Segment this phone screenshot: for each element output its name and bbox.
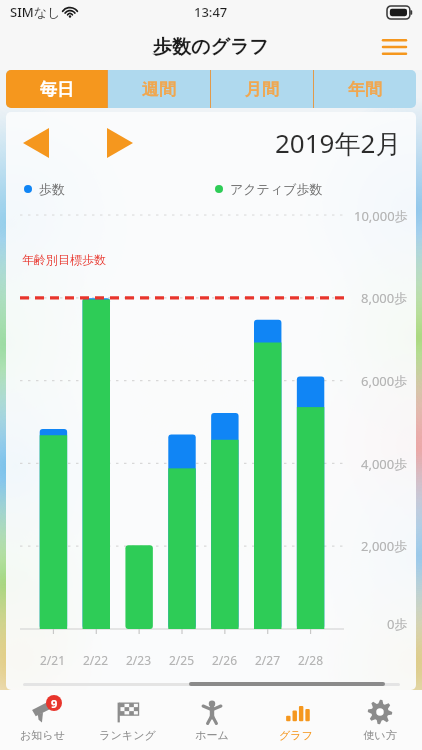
staticText: 2/27 xyxy=(255,652,281,668)
button[interactable]: 9 xyxy=(0,690,85,750)
staticText: 2/26 xyxy=(212,652,238,668)
button[interactable]: 週間 xyxy=(108,70,210,108)
staticText: 毎日 xyxy=(40,79,74,100)
staticText: 2/25 xyxy=(169,652,195,668)
button[interactable]: Menu xyxy=(374,27,414,67)
staticText: 8,000歩 xyxy=(361,289,408,307)
staticText: 0歩 xyxy=(387,615,408,633)
staticText: SIMなし xyxy=(10,3,61,21)
staticText: 2/21 xyxy=(40,652,66,668)
button[interactable]: Previous month xyxy=(14,121,58,165)
button[interactable]: ホーム xyxy=(170,690,254,750)
staticText: 使い方 xyxy=(363,728,397,742)
button[interactable]: ランキング xyxy=(85,690,170,750)
staticText: 週間 xyxy=(142,79,176,100)
button[interactable]: 使い方 xyxy=(338,690,422,750)
staticText: 6,000歩 xyxy=(361,372,408,390)
staticText: お知らせ xyxy=(20,728,65,742)
staticText: 13:47 xyxy=(194,3,228,21)
staticText: 歩数のグラフ xyxy=(153,35,269,59)
staticText: 2019年2月 xyxy=(275,125,402,161)
staticText: 2/22 xyxy=(83,652,109,668)
staticText: 4,000歩 xyxy=(361,455,408,473)
staticText: 2,000歩 xyxy=(361,537,408,555)
staticText: ホーム xyxy=(195,728,229,742)
button[interactable]: 毎日 xyxy=(6,70,107,108)
staticText: 2/23 xyxy=(126,652,152,668)
staticText: ランキング xyxy=(99,728,156,742)
staticText: アクティブ歩数 xyxy=(230,181,323,197)
button[interactable]: 年間 xyxy=(314,70,416,108)
staticText: 9 xyxy=(51,696,58,711)
button[interactable]: Next month xyxy=(98,121,142,165)
staticText: 月間 xyxy=(245,79,279,100)
staticText: グラフ xyxy=(279,728,313,742)
button[interactable]: 月間 xyxy=(211,70,313,108)
button[interactable]: グラフ xyxy=(254,690,338,750)
staticText: 歩数 xyxy=(39,181,65,197)
staticText: 10,000歩 xyxy=(354,207,408,225)
staticText: 2/28 xyxy=(298,652,324,668)
staticText: 年間 xyxy=(348,79,382,100)
staticText: 年齢別目標歩数 xyxy=(22,252,106,267)
